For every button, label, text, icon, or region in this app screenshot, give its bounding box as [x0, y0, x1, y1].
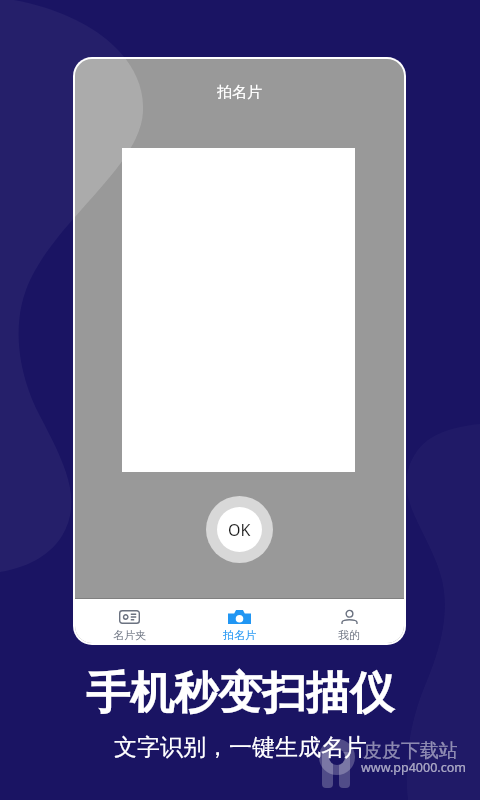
- staticText: 皮皮下载站: [363, 739, 458, 763]
- staticText: www.pp4000.com: [361, 759, 466, 776]
- staticText: 手机秒变扫描仪: [86, 666, 394, 721]
- staticText: 拍名片: [223, 628, 256, 642]
- staticText: OK: [228, 519, 251, 541]
- button[interactable]: Profile: [294, 599, 404, 643]
- staticText: 名片夹: [113, 628, 146, 642]
- staticText: 我的: [338, 628, 360, 642]
- button[interactable]: Card folder: [75, 599, 184, 643]
- staticText: 拍名片: [217, 83, 262, 102]
- button[interactable]: Scan card: [184, 599, 294, 643]
- staticText: 文字识别，一键生成名片: [114, 733, 367, 762]
- button[interactable]: OK: [206, 496, 273, 563]
